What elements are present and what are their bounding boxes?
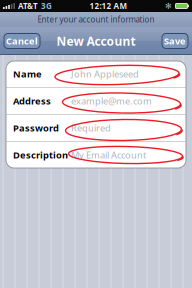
button[interactable]: Address: [6, 88, 186, 114]
staticText: Required: [71, 122, 111, 134]
staticText: Save: [164, 35, 186, 47]
staticText: New Account: [56, 33, 135, 49]
staticText: ✻: [165, 1, 172, 11]
staticText: example@me.com: [71, 95, 152, 107]
button[interactable]: Description: [6, 142, 186, 168]
staticText: Address: [13, 95, 51, 107]
staticText: AT&T: [18, 1, 38, 11]
staticText: Description: [13, 149, 68, 161]
staticText: My Email Account: [71, 149, 146, 161]
staticText: Password: [13, 122, 59, 134]
staticText: Name: [13, 68, 42, 80]
button[interactable]: Save: [162, 33, 188, 48]
button[interactable]: Name: [6, 61, 186, 87]
button[interactable]: Password: [6, 115, 186, 141]
staticText: John Appleseed: [71, 68, 139, 80]
staticText: Enter your account information: [37, 14, 154, 25]
button[interactable]: Cancel: [4, 33, 40, 48]
staticText: 12:12 AM: [89, 1, 127, 11]
staticText: 3G: [41, 1, 52, 11]
staticText: Cancel: [6, 35, 38, 47]
